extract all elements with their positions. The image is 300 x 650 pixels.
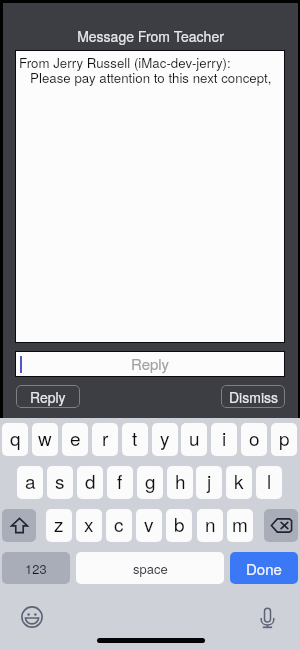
staticText: g bbox=[145, 467, 156, 494]
button[interactable]: w bbox=[32, 423, 58, 456]
button[interactable]: Reply bbox=[16, 385, 80, 408]
button[interactable]: o bbox=[241, 423, 267, 456]
staticText: a bbox=[25, 467, 36, 494]
staticText: Done bbox=[246, 558, 282, 579]
button[interactable]: Emoji keyboard bbox=[18, 603, 46, 631]
staticText: n bbox=[205, 510, 216, 537]
button[interactable]: b bbox=[166, 509, 192, 542]
button[interactable]: x bbox=[76, 509, 102, 542]
staticText: p bbox=[279, 424, 290, 451]
button[interactable]: i bbox=[211, 423, 237, 456]
staticText: o bbox=[249, 424, 260, 451]
staticText: e bbox=[70, 424, 81, 451]
staticText: s bbox=[55, 467, 65, 494]
staticText: t bbox=[132, 424, 138, 451]
staticText: v bbox=[144, 510, 154, 537]
button[interactable]: u bbox=[181, 423, 207, 456]
button[interactable]: z bbox=[46, 509, 72, 542]
staticText: c bbox=[114, 510, 124, 537]
staticText: i bbox=[222, 424, 227, 451]
staticText: d bbox=[85, 467, 96, 494]
button[interactable]: h bbox=[167, 466, 193, 499]
button[interactable]: v bbox=[136, 509, 162, 542]
button[interactable]: Backspace bbox=[264, 509, 298, 542]
staticText: j bbox=[207, 467, 212, 494]
staticText: u bbox=[189, 424, 200, 451]
staticText: Reply bbox=[30, 387, 66, 407]
button[interactable]: y bbox=[152, 423, 178, 456]
staticText: h bbox=[175, 467, 186, 494]
button[interactable]: g bbox=[137, 466, 163, 499]
button[interactable]: f bbox=[107, 466, 133, 499]
staticText: Message From Teacher bbox=[77, 26, 224, 46]
staticText: Reply bbox=[131, 353, 170, 374]
staticText: y bbox=[160, 424, 170, 451]
button[interactable]: Shift bbox=[2, 509, 36, 542]
button[interactable]: c bbox=[106, 509, 132, 542]
staticText: r bbox=[102, 424, 109, 451]
staticText: k bbox=[234, 467, 244, 494]
staticText: m bbox=[232, 510, 248, 537]
button[interactable]: l bbox=[256, 466, 282, 499]
button[interactable]: m bbox=[227, 509, 253, 542]
staticText: x bbox=[84, 510, 94, 537]
staticText: Dismiss bbox=[229, 387, 278, 407]
button[interactable]: e bbox=[62, 423, 88, 456]
button[interactable]: d bbox=[77, 466, 103, 499]
button[interactable]: Dictation bbox=[254, 604, 280, 632]
staticText: l bbox=[267, 467, 272, 494]
staticText: b bbox=[174, 510, 185, 537]
button[interactable]: a bbox=[17, 466, 43, 499]
staticText: space bbox=[133, 559, 168, 578]
button[interactable]: n bbox=[197, 509, 223, 542]
button[interactable]: j bbox=[196, 466, 222, 499]
staticText: 123 bbox=[25, 559, 47, 578]
button[interactable]: space bbox=[76, 552, 224, 584]
staticText: z bbox=[54, 510, 64, 537]
button[interactable]: k bbox=[226, 466, 252, 499]
button[interactable]: s bbox=[47, 466, 73, 499]
staticText: From Jerry Russell (iMac-dev-jerry): Ple… bbox=[19, 53, 272, 87]
button[interactable]: p bbox=[271, 423, 297, 456]
staticText: w bbox=[38, 424, 52, 451]
staticText: q bbox=[10, 424, 21, 451]
button[interactable]: 123 bbox=[2, 552, 70, 584]
button[interactable]: Done bbox=[230, 552, 298, 584]
button[interactable]: Dismiss bbox=[221, 385, 285, 408]
staticText: f bbox=[117, 467, 123, 494]
button[interactable]: q bbox=[2, 423, 28, 456]
button[interactable]: t bbox=[122, 423, 148, 456]
button[interactable]: r bbox=[92, 423, 118, 456]
button[interactable]: Reply bbox=[16, 352, 284, 376]
